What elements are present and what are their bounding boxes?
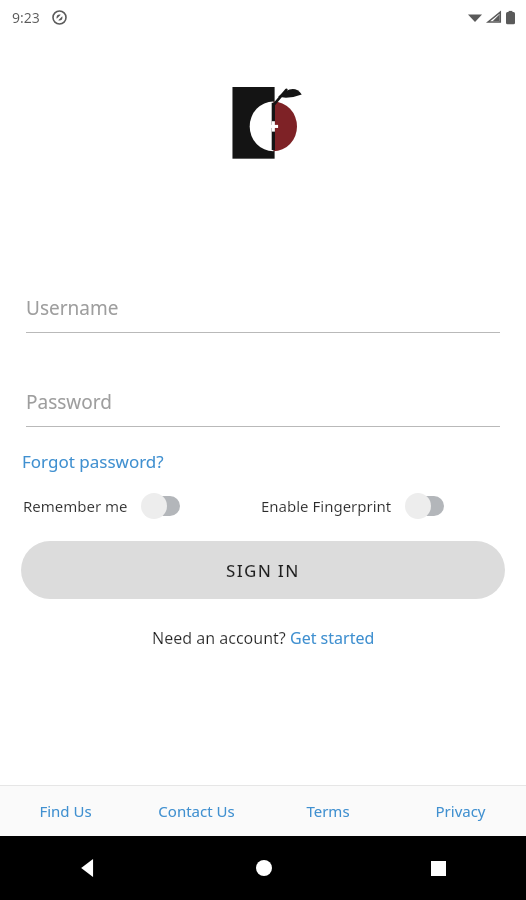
button[interactable]: Contact Us bbox=[131, 786, 262, 836]
staticText: Need an account? bbox=[152, 627, 290, 649]
staticText: Terms bbox=[306, 801, 350, 821]
button[interactable]: Remember me bbox=[23, 493, 183, 519]
button[interactable]: Forgot password? bbox=[21, 447, 165, 476]
staticText: Contact Us bbox=[158, 801, 235, 821]
button[interactable]: SIGN IN bbox=[21, 541, 505, 599]
staticText: Username bbox=[26, 295, 119, 321]
staticText: Remember me bbox=[23, 496, 128, 516]
staticText: Enable Fingerprint bbox=[261, 496, 392, 516]
button[interactable]: Privacy bbox=[394, 786, 526, 836]
button[interactable]: Home bbox=[176, 836, 351, 900]
button[interactable]: Password bbox=[26, 389, 500, 427]
staticText: Find Us bbox=[39, 801, 92, 821]
staticText: Get started bbox=[290, 627, 375, 649]
button[interactable]: Username bbox=[26, 295, 500, 333]
button[interactable]: Get started bbox=[290, 627, 375, 649]
staticText: Password bbox=[26, 389, 112, 415]
button[interactable]: Recent apps bbox=[351, 836, 526, 900]
staticText: Forgot password? bbox=[22, 450, 164, 473]
button[interactable]: Back bbox=[0, 836, 176, 900]
staticText: Privacy bbox=[435, 801, 486, 821]
button[interactable]: Terms bbox=[262, 786, 394, 836]
staticText: SIGN IN bbox=[226, 559, 300, 582]
staticText: 9:23 bbox=[12, 8, 40, 27]
button[interactable]: Find Us bbox=[0, 786, 131, 836]
button[interactable]: Enable Fingerprint bbox=[261, 493, 447, 519]
